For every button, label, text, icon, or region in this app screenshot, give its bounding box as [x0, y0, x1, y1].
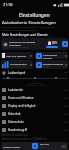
button[interactable]: Akkuverbrauch	[1, 60, 33, 69]
staticText: Weitere Einstellungen	[2, 133, 29, 137]
staticText: Akkuverbrauch	[10, 62, 27, 65]
staticText: Verlauf	[43, 65, 51, 68]
button[interactable]: Benachrichtigung	[35, 60, 68, 69]
staticText: Fahrzeug und Geraete	[9, 40, 36, 43]
staticText: Verwalten Sie alle Einstellungen Ihres F…	[2, 26, 55, 29]
staticText: bequem an einem zentralen Ort.	[2, 29, 38, 32]
staticText: Ihr Speicher	[28, 81, 42, 84]
button[interactable]: Verbundene Geraete	[35, 52, 68, 59]
staticText: Standortzugriff	[8, 128, 28, 132]
staticText: Toene und Vibration	[8, 96, 34, 100]
staticText: Benachrichtigung	[43, 62, 63, 65]
button[interactable]: Sicherheit	[0, 110, 69, 118]
staticText: 22.04.2023 17:48	[25, 84, 45, 87]
staticText: Autobatterie Einstellungen	[2, 20, 56, 26]
staticText: 85%	[52, 41, 58, 45]
button[interactable]: Display und Helligkeit	[0, 102, 69, 110]
staticText: System-Update	[3, 145, 21, 148]
staticText: verbinden	[9, 43, 21, 46]
button[interactable]: Netz und Internet	[1, 52, 33, 59]
staticText: Sicherheit	[8, 112, 21, 116]
staticText: Erweiterte Funktionen und Zubehoer	[2, 137, 48, 141]
button[interactable]: Toene und Vibration	[0, 94, 69, 102]
button[interactable]: System-Update	[1, 142, 68, 150]
button[interactable]: Standortzugriff	[0, 126, 69, 134]
staticText: Info und	[40, 143, 49, 146]
staticText: der letzten 24h	[10, 65, 26, 68]
button[interactable]: Datenschutz	[0, 118, 69, 126]
staticText: Version	[40, 146, 48, 149]
staticText: Lautstaerke	[8, 88, 23, 92]
staticText: Verbundene Geraete	[43, 53, 65, 59]
staticText: 21:06	[3, 2, 13, 7]
staticText: Datenschutz	[8, 120, 24, 124]
staticText: Netz und Internet	[6, 54, 26, 57]
staticText: Display und Helligkeit	[8, 104, 36, 108]
button[interactable]: Lautstaerke	[0, 86, 69, 94]
staticText: Mein Einstellungen und Dienste	[2, 33, 48, 37]
staticText: Einstellungen	[19, 12, 50, 18]
button[interactable]: Laufwerkpool	[0, 69, 69, 76]
staticText: Laufwerkpool	[8, 71, 26, 75]
button[interactable]: Fahrzeug und Geraete	[1, 38, 68, 50]
staticText: Akkustand pruefen	[9, 46, 29, 49]
